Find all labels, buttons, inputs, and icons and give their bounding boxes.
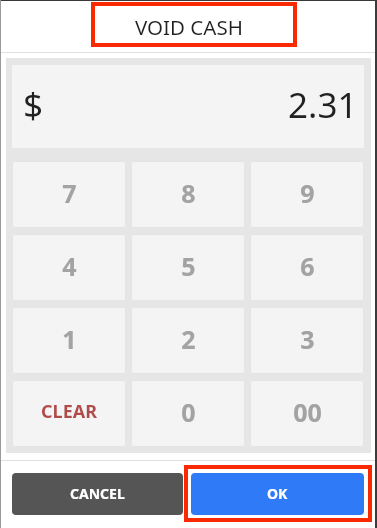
button[interactable]: 5	[131, 234, 245, 301]
staticText: 3	[300, 322, 315, 356]
button[interactable]: $	[12, 65, 364, 148]
staticText: 4	[62, 249, 77, 283]
staticText: OK	[267, 484, 288, 503]
staticText: 00	[293, 395, 322, 429]
staticText: CLEAR	[41, 399, 97, 424]
staticText: 5	[181, 249, 196, 283]
staticText: 6	[300, 249, 315, 283]
button[interactable]: 7	[12, 161, 126, 228]
button[interactable]: CLEAR	[12, 380, 126, 447]
button[interactable]: 00	[250, 380, 364, 447]
staticText: CANCEL	[70, 484, 125, 503]
staticText: 2.31	[288, 81, 358, 129]
staticText: 7	[62, 176, 77, 210]
button[interactable]: 0	[131, 380, 245, 447]
button[interactable]: CANCEL	[12, 473, 183, 515]
button[interactable]: 3	[250, 307, 364, 374]
staticText: VOID CASH	[135, 13, 243, 41]
staticText: 1	[62, 322, 77, 356]
staticText: 9	[300, 176, 315, 210]
button[interactable]: 2	[131, 307, 245, 374]
staticText: 0	[181, 395, 196, 429]
button[interactable]: 9	[250, 161, 364, 228]
staticText: $	[23, 81, 44, 129]
button[interactable]: 8	[131, 161, 245, 228]
staticText: 2	[181, 322, 196, 356]
button[interactable]: OK	[191, 473, 364, 515]
button[interactable]: 1	[12, 307, 126, 374]
button[interactable]: 6	[250, 234, 364, 301]
staticText: 8	[181, 176, 196, 210]
button[interactable]: 4	[12, 234, 126, 301]
